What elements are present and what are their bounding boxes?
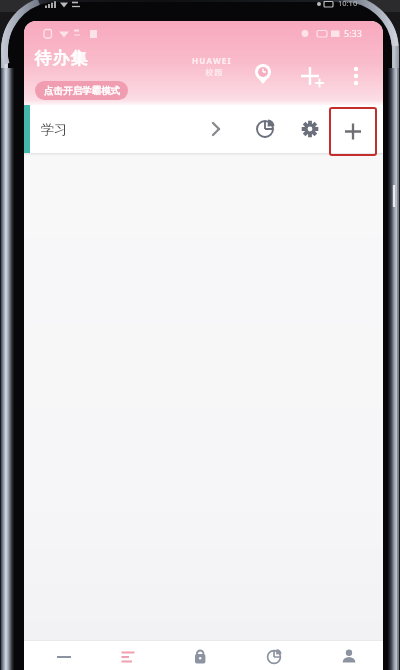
staticText: 学习 xyxy=(41,121,67,137)
staticText: 待办集 xyxy=(34,48,88,69)
staticText: HUAWEI xyxy=(192,55,232,66)
button[interactable] xyxy=(298,116,322,140)
button[interactable] xyxy=(24,641,96,670)
button[interactable] xyxy=(254,116,278,140)
button[interactable] xyxy=(311,641,383,670)
button[interactable] xyxy=(239,641,311,670)
button[interactable] xyxy=(348,64,364,88)
button[interactable] xyxy=(168,641,240,670)
button[interactable] xyxy=(251,62,275,86)
button[interactable] xyxy=(298,64,326,90)
staticText: 校园 xyxy=(205,67,223,77)
staticText: 10:10 xyxy=(338,0,358,8)
button[interactable] xyxy=(341,119,365,143)
staticText: 5:33 xyxy=(344,27,362,39)
button[interactable]: 点击开启学霸模式 xyxy=(35,81,128,100)
button[interactable]: 学习 xyxy=(24,105,383,153)
button[interactable] xyxy=(206,119,226,139)
staticText: 点击开启学霸模式 xyxy=(44,85,120,97)
button[interactable] xyxy=(96,641,168,670)
